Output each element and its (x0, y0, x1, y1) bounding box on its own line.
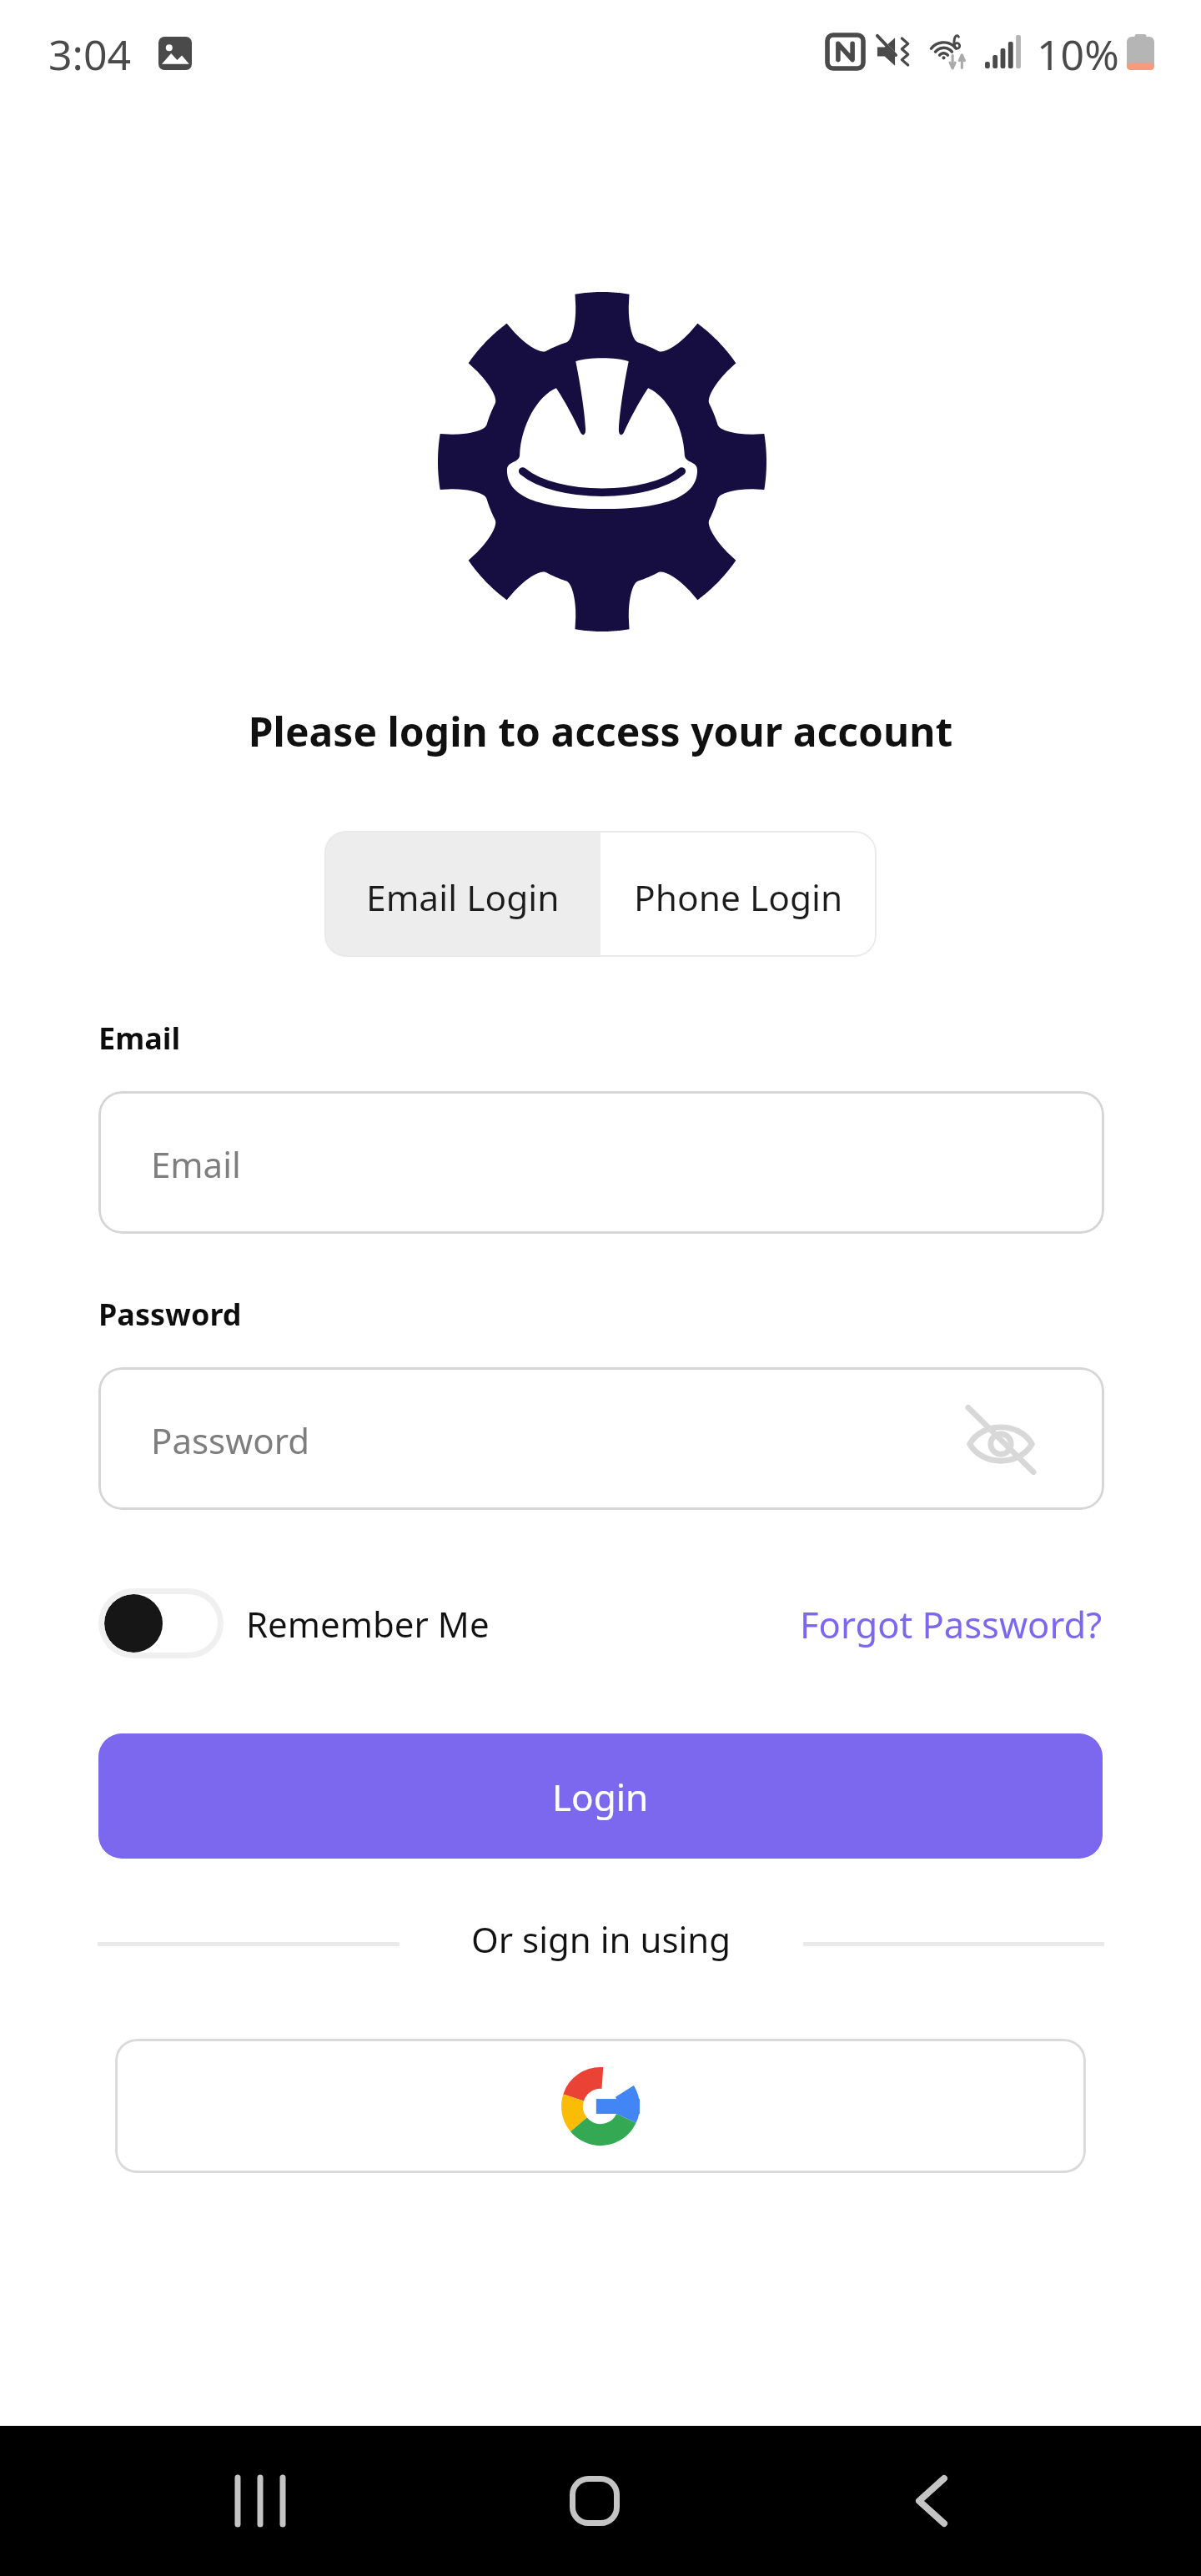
button[interactable]: Home (545, 2451, 645, 2551)
button[interactable]: Email Login (324, 831, 600, 957)
button[interactable]: Toggle password visibility (959, 1398, 1043, 1482)
staticText: 3:04 (48, 26, 132, 83)
staticText: Phone Login (634, 873, 843, 922)
button[interactable]: Sign in with Google (115, 2039, 1086, 2173)
staticText: Email Login (366, 873, 560, 922)
button[interactable]: Remember Me (98, 1588, 490, 1658)
button[interactable]: Password (98, 1367, 1104, 1510)
staticText: Password (98, 1294, 242, 1335)
staticText: Password (151, 1416, 309, 1464)
staticText: Please login to access your account (0, 704, 1201, 758)
button[interactable]: Email (98, 1091, 1104, 1234)
staticText: Email (151, 1140, 241, 1188)
staticText: 10% (1037, 26, 1119, 83)
staticText: Forgot Password? (800, 1599, 1103, 1648)
staticText: Email (98, 1018, 181, 1059)
button[interactable]: Phone Login (600, 831, 877, 957)
staticText: Or sign in using (471, 1915, 731, 1963)
button[interactable]: Recent apps (210, 2451, 310, 2551)
button[interactable]: Login (98, 1733, 1103, 1859)
button[interactable]: Forgot Password? (791, 1588, 1103, 1658)
button[interactable]: Back (882, 2451, 982, 2551)
staticText: Remember Me (246, 1600, 490, 1648)
staticText: Login (552, 1772, 649, 1822)
